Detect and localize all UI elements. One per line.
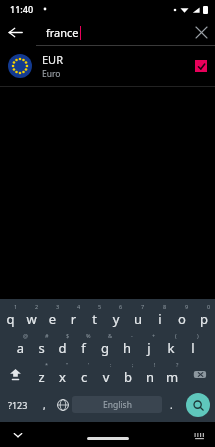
button[interactable]: % — [73, 331, 94, 360]
button[interactable]: Clear — [187, 18, 215, 46]
staticText: English — [103, 399, 132, 411]
button[interactable]: - — [116, 331, 138, 360]
button[interactable]: 0 — [193, 302, 215, 331]
staticText: . — [170, 398, 173, 412]
button[interactable]: + — [138, 331, 160, 360]
button[interactable]: ? — [161, 360, 183, 389]
staticText: d — [52, 339, 73, 357]
button[interactable]: Hide keyboard — [10, 427, 26, 443]
staticText: h — [116, 339, 138, 357]
button[interactable]: Back — [0, 18, 30, 46]
staticText: 4 — [77, 303, 81, 310]
staticText: z — [31, 368, 52, 386]
staticText: g — [94, 339, 116, 357]
staticText: t — [84, 310, 105, 328]
staticText: r — [63, 310, 84, 328]
button[interactable]: # — [31, 331, 52, 360]
staticText: ( — [175, 332, 177, 339]
staticText: Euro — [42, 68, 61, 80]
staticText: x — [52, 368, 73, 386]
button[interactable]: Backspace — [183, 360, 215, 389]
staticText: 6 — [119, 303, 123, 310]
staticText: f — [73, 339, 94, 357]
button[interactable]: ) — [182, 331, 204, 360]
button[interactable]: 7 — [127, 302, 149, 331]
staticText: ' — [88, 361, 90, 368]
staticText: v — [95, 368, 117, 386]
button[interactable]: * — [31, 360, 52, 389]
button[interactable]: ; — [117, 360, 139, 389]
staticText: ? — [176, 361, 179, 368]
staticText: n — [139, 368, 161, 386]
button[interactable]: Search — [186, 393, 210, 417]
staticText: p — [193, 310, 215, 328]
staticText: & — [108, 332, 113, 339]
staticText: e — [42, 310, 63, 328]
staticText: 2 — [35, 303, 39, 310]
staticText: 11:40 — [10, 3, 34, 15]
staticText: l — [182, 339, 204, 357]
staticText: y — [105, 310, 127, 328]
staticText: 7 — [141, 303, 145, 310]
staticText: ) — [197, 332, 199, 339]
staticText: 1 — [14, 303, 18, 310]
button[interactable]: 3 — [42, 302, 63, 331]
button[interactable]: Selected — [195, 60, 207, 72]
button[interactable]: 1 — [0, 302, 21, 331]
button[interactable]: 2 — [21, 302, 42, 331]
staticText: : — [110, 361, 112, 368]
staticText: 5 — [98, 303, 102, 310]
staticText: 0 — [207, 303, 211, 310]
button[interactable]: 5 — [84, 302, 105, 331]
button[interactable]: 6 — [105, 302, 127, 331]
staticText: u — [127, 310, 149, 328]
button[interactable]: ( — [160, 331, 182, 360]
staticText: w — [21, 310, 42, 328]
staticText: m — [161, 368, 183, 386]
button[interactable]: . — [162, 389, 181, 420]
staticText: " — [66, 361, 69, 368]
staticText: o — [171, 310, 193, 328]
staticText: % — [86, 332, 91, 339]
staticText: ! — [154, 361, 156, 368]
staticText: @ — [23, 332, 28, 339]
button[interactable]: ?123 — [0, 389, 35, 420]
staticText: EUR — [42, 52, 63, 67]
button[interactable]: Change language — [53, 389, 72, 420]
button[interactable]: Switch keyboard — [192, 428, 206, 442]
staticText: - — [131, 332, 133, 339]
button[interactable]: ' — [73, 360, 95, 389]
staticText: + — [152, 332, 156, 339]
button[interactable]: 8 — [149, 302, 171, 331]
staticText: $ — [66, 332, 70, 339]
button[interactable]: English — [72, 396, 162, 413]
staticText: c — [73, 368, 95, 386]
button[interactable]: : — [95, 360, 117, 389]
button[interactable]: Shift — [0, 360, 31, 389]
staticText: * — [45, 361, 49, 368]
button[interactable]: " — [52, 360, 73, 389]
staticText: a — [10, 339, 31, 357]
button[interactable]: 4 — [63, 302, 84, 331]
staticText: k — [160, 339, 182, 357]
staticText: ?123 — [8, 399, 28, 411]
staticText: i — [149, 310, 171, 328]
button[interactable]: 9 — [171, 302, 193, 331]
button[interactable]: ! — [139, 360, 161, 389]
button[interactable]: $ — [52, 331, 73, 360]
staticText: b — [117, 368, 139, 386]
staticText: 8 — [163, 303, 167, 310]
button[interactable]: , — [35, 389, 53, 420]
staticText: q — [0, 310, 21, 328]
staticText: 3 — [56, 303, 60, 310]
staticText: # — [45, 332, 49, 339]
button[interactable]: & — [94, 331, 116, 360]
button[interactable]: @ — [10, 331, 31, 360]
staticText: j — [138, 339, 160, 357]
staticText: france — [46, 25, 79, 40]
staticText: , — [43, 398, 46, 412]
staticText: 9 — [185, 303, 189, 310]
staticText: ; — [132, 361, 134, 368]
staticText: s — [31, 339, 52, 357]
button[interactable]: EUR — [0, 46, 215, 86]
